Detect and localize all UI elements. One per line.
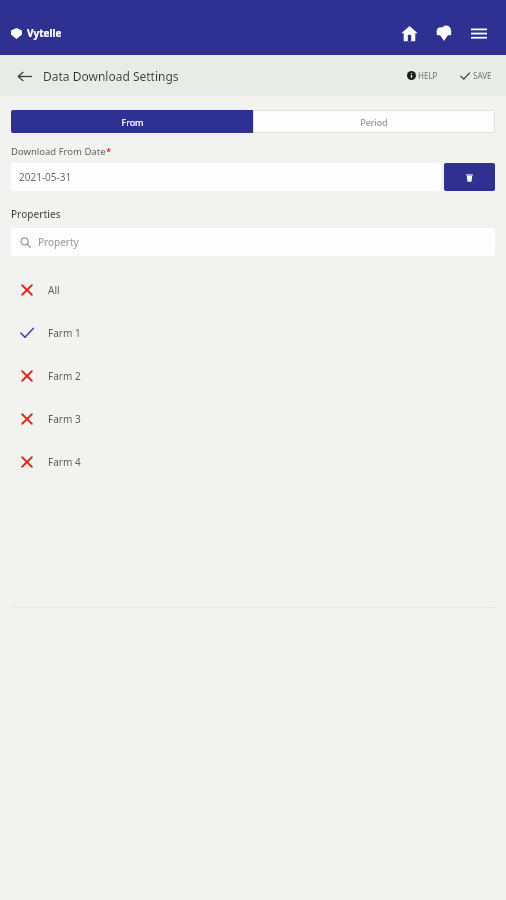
button[interactable]: Farm 4 <box>0 440 506 483</box>
button[interactable]: 2021-05-31 <box>11 163 441 191</box>
staticText: Farm 3 <box>48 412 81 426</box>
button[interactable]: All <box>0 268 506 311</box>
button[interactable]: Clear date <box>444 163 495 191</box>
button[interactable]: Download <box>429 18 459 48</box>
staticText: Download From Date <box>11 145 106 158</box>
staticText: All <box>48 283 60 297</box>
button[interactable]: Farm 3 <box>0 397 506 440</box>
button[interactable]: Home <box>394 18 424 48</box>
staticText: 2021-05-31 <box>19 170 72 184</box>
staticText: From <box>121 116 144 128</box>
staticText: Farm 2 <box>48 369 81 383</box>
button[interactable]: HELP <box>403 64 442 87</box>
staticText: SAVE <box>473 70 492 81</box>
button[interactable]: Farm 2 <box>0 354 506 397</box>
button[interactable]: Period <box>253 110 495 133</box>
staticText: Farm 4 <box>48 455 81 469</box>
staticText: HELP <box>418 70 438 81</box>
button[interactable]: Back <box>10 62 38 90</box>
staticText: Properties <box>11 207 61 221</box>
staticText: Property <box>38 235 79 249</box>
staticText: * <box>106 145 112 158</box>
button[interactable]: Menu <box>464 18 494 48</box>
button[interactable]: From <box>11 110 253 133</box>
button[interactable]: Property <box>11 228 495 256</box>
button[interactable]: SAVE <box>456 64 496 87</box>
staticText: Data Download Settings <box>43 68 179 84</box>
staticText: Period <box>360 116 388 128</box>
staticText: Vytelle <box>27 26 62 40</box>
staticText: Farm 1 <box>48 326 81 340</box>
button[interactable]: Farm 1 <box>0 311 506 354</box>
